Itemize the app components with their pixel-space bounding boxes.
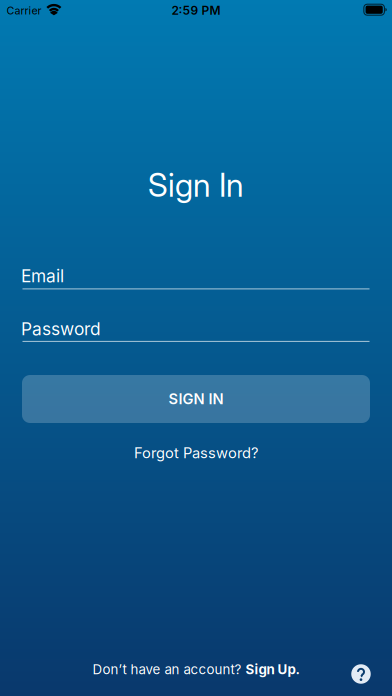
button[interactable]: Don’t have an account? — [92, 662, 299, 677]
staticText: Forgot Password? — [134, 444, 258, 461]
staticText: Sign In — [148, 166, 244, 204]
staticText: Don’t have an account? — [92, 662, 245, 677]
staticText: Carrier — [6, 4, 41, 17]
staticText: Password — [21, 319, 101, 339]
staticText: SIGN IN — [168, 390, 223, 408]
button[interactable]: SIGN IN — [22, 375, 370, 423]
button[interactable]: Forgot Password? — [134, 444, 258, 461]
staticText: Email — [21, 266, 64, 286]
textField[interactable]: Password — [22, 320, 369, 342]
staticText: 2:59 PM — [171, 3, 220, 18]
textField[interactable]: Email — [22, 267, 369, 289]
staticText: Sign Up. — [245, 662, 299, 677]
button[interactable] — [351, 664, 371, 684]
